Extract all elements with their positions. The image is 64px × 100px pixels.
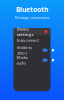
staticText: Manage connections <box>14 15 49 20</box>
staticText: Auto-connect <box>16 37 38 43</box>
staticText: Visible to others <box>16 45 31 55</box>
staticText: Bluetooth <box>16 5 48 14</box>
staticText: Device settings <box>16 26 33 37</box>
staticText: Media audio <box>16 55 27 65</box>
